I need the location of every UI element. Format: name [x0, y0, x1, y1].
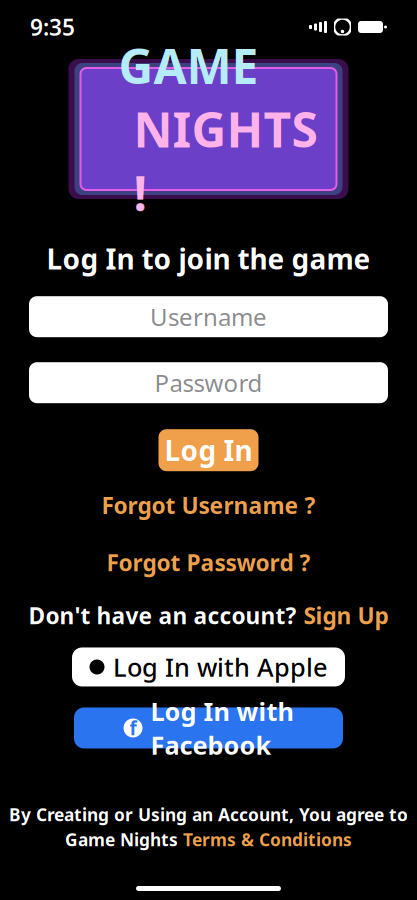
staticText: Forgot Password ? — [106, 547, 310, 577]
button[interactable]: Password — [29, 362, 388, 403]
staticText: By Creating or Using an Account, You agr… — [9, 803, 408, 826]
staticText: Sign Up — [303, 600, 388, 630]
button[interactable]: Username — [29, 296, 388, 337]
staticText: Log In to join the game — [46, 240, 370, 277]
staticText: Username — [150, 301, 267, 333]
staticText: Log In with Facebook — [150, 694, 293, 762]
button[interactable] — [72, 647, 345, 686]
staticText: f — [129, 716, 136, 740]
staticText: GAME — [118, 33, 258, 97]
staticText: Terms & Conditions — [183, 828, 352, 851]
staticText: NIGHTS! — [133, 97, 317, 225]
button[interactable]: Log In — [158, 429, 258, 471]
staticText: Log In with Apple — [113, 650, 328, 684]
button[interactable]: f — [74, 707, 343, 748]
staticText: Don't have an account? — [28, 600, 296, 630]
button[interactable]: Sign Up — [303, 600, 388, 630]
button[interactable]: Forgot Password ? — [96, 543, 320, 581]
button[interactable]: Forgot Username ? — [91, 486, 325, 524]
staticText: 9:35 — [30, 12, 75, 42]
staticText: Game Nights — [65, 828, 178, 851]
staticText: Log In — [164, 432, 252, 469]
staticText: Password — [154, 367, 262, 399]
staticText: Forgot Username ? — [101, 490, 315, 520]
button[interactable]: Terms & Conditions — [183, 828, 352, 851]
